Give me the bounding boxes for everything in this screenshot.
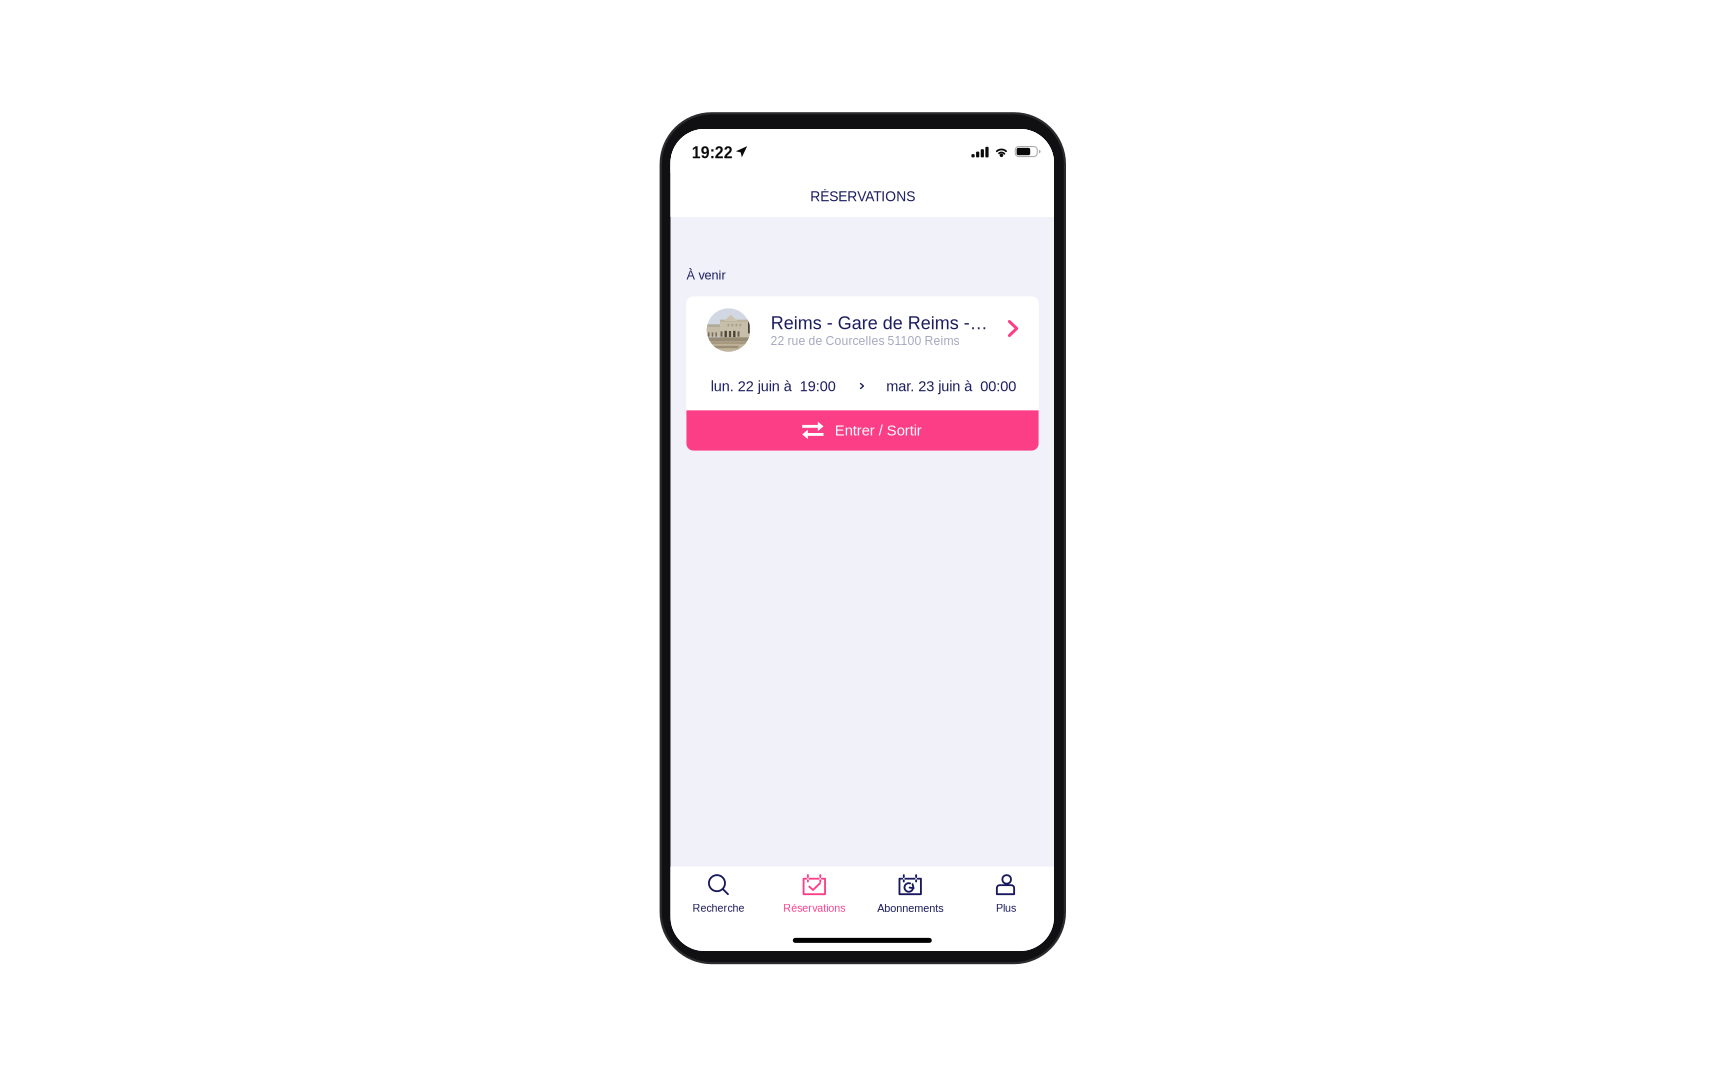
staticText: À venir — [686, 268, 725, 282]
staticText: Abonnements — [877, 902, 943, 914]
staticText: Reims - Gare de Reims -… — [771, 313, 988, 333]
button[interactable]: Entrer / Sortir — [686, 410, 1039, 451]
staticText: Réservations — [783, 902, 845, 914]
staticText: mar. 23 juin à 00:00 — [886, 378, 1016, 394]
staticText: 22 rue de Courcelles 51100 Reims — [770, 334, 959, 348]
staticText: RÉSERVATIONS — [810, 189, 915, 204]
button[interactable]: Réservations — [766, 874, 862, 921]
staticText: 19:22 — [692, 144, 733, 161]
staticText: lun. 22 juin à 19:00 — [711, 378, 836, 394]
button[interactable]: Abonnements — [862, 874, 958, 921]
staticText: Entrer / Sortir — [835, 422, 922, 438]
button[interactable]: Recherche — [670, 874, 766, 921]
staticText: Plus — [996, 902, 1016, 914]
button[interactable]: Reims - Gare de Reims -… — [686, 297, 1039, 370]
button[interactable]: Plus — [958, 874, 1054, 921]
staticText: Recherche — [692, 902, 744, 914]
